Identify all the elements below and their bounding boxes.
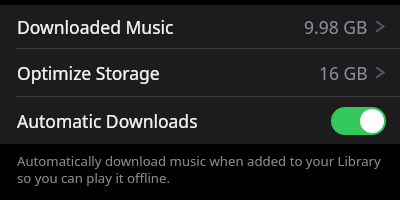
button[interactable]: Automatic Downloads [0,97,400,144]
staticText: Downloaded Music [17,15,174,39]
staticText: 9.98 GB [304,15,368,39]
button[interactable]: Optimize Storage [0,49,400,96]
staticText: 16 GB [319,61,368,85]
button[interactable]: Downloaded Music [0,5,400,48]
button[interactable]: Automatic Downloads toggle, on [331,107,386,135]
staticText: Optimize Storage [17,61,160,85]
staticText: Automatically download music when added … [17,152,381,187]
staticText: Automatic Downloads [17,109,198,133]
